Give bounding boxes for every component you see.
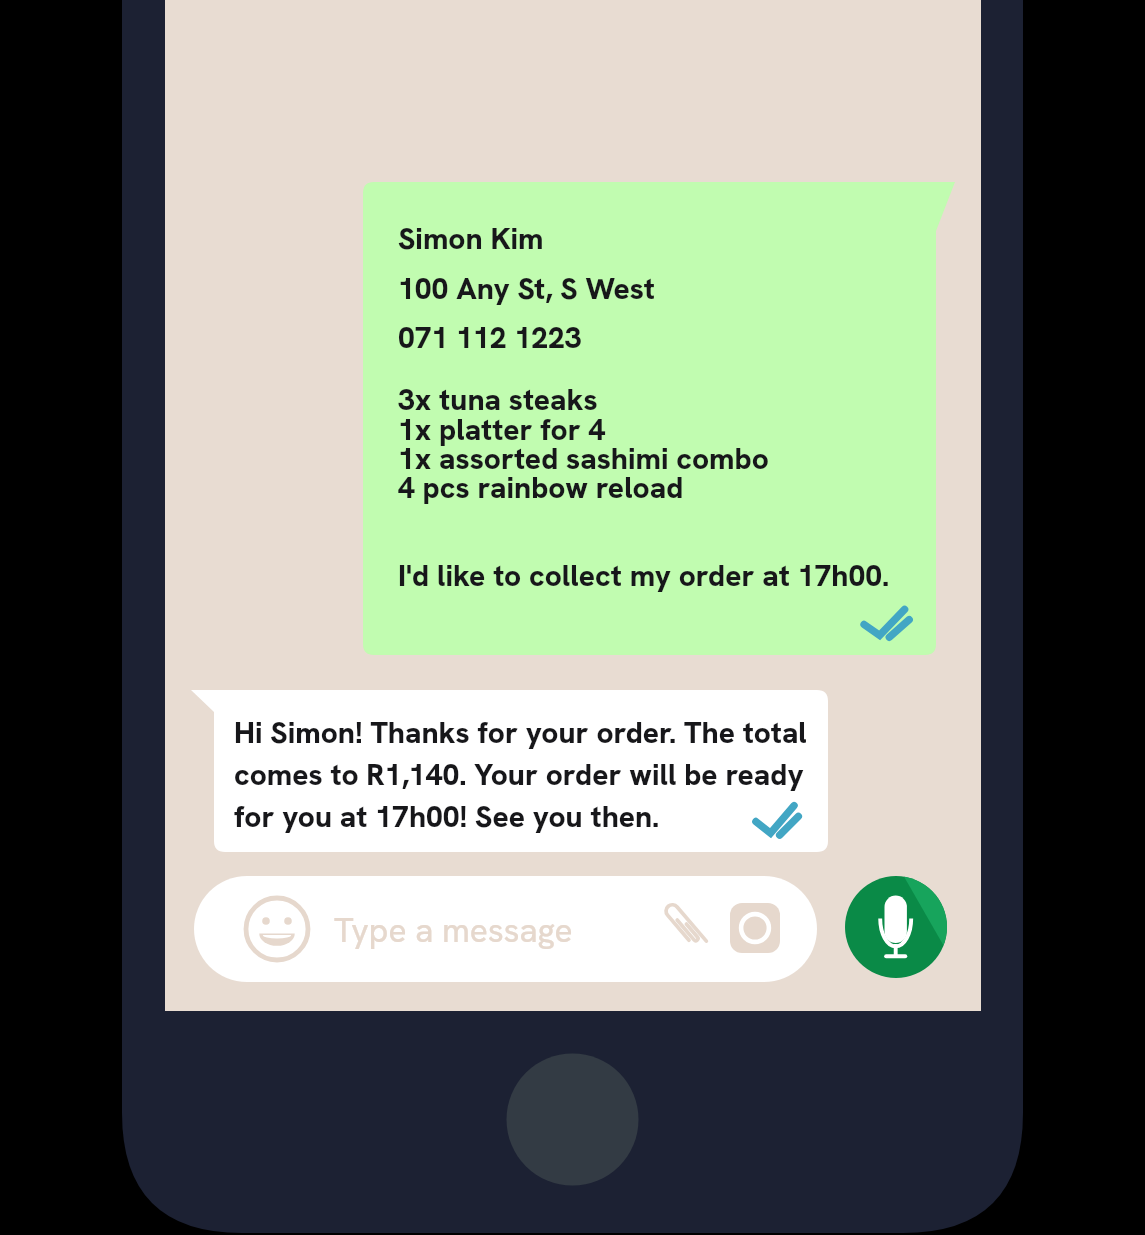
button[interactable]	[194, 876, 817, 982]
staticText: Hi Simon! Thanks for your order. The tot…	[234, 713, 807, 836]
staticText: I'd like to collect my order at 17h00.	[398, 556, 890, 595]
staticText: 071 112 1223	[398, 318, 582, 357]
button[interactable]: Attach file	[658, 899, 714, 955]
staticText: Type a message	[334, 908, 573, 952]
staticText: 100 Any St, S West	[398, 269, 656, 308]
button[interactable]: Camera	[730, 903, 780, 953]
button[interactable]: Record voice message	[845, 876, 947, 978]
button[interactable]: Simon Kim	[363, 182, 955, 655]
button[interactable]: Emoji	[237, 889, 317, 969]
staticText: 3x tuna steaks 1x platter for 4 1x assor…	[398, 380, 769, 507]
button[interactable]: Hi Simon! Thanks for your order. The tot…	[191, 690, 828, 852]
staticText: Simon Kim	[398, 219, 544, 258]
